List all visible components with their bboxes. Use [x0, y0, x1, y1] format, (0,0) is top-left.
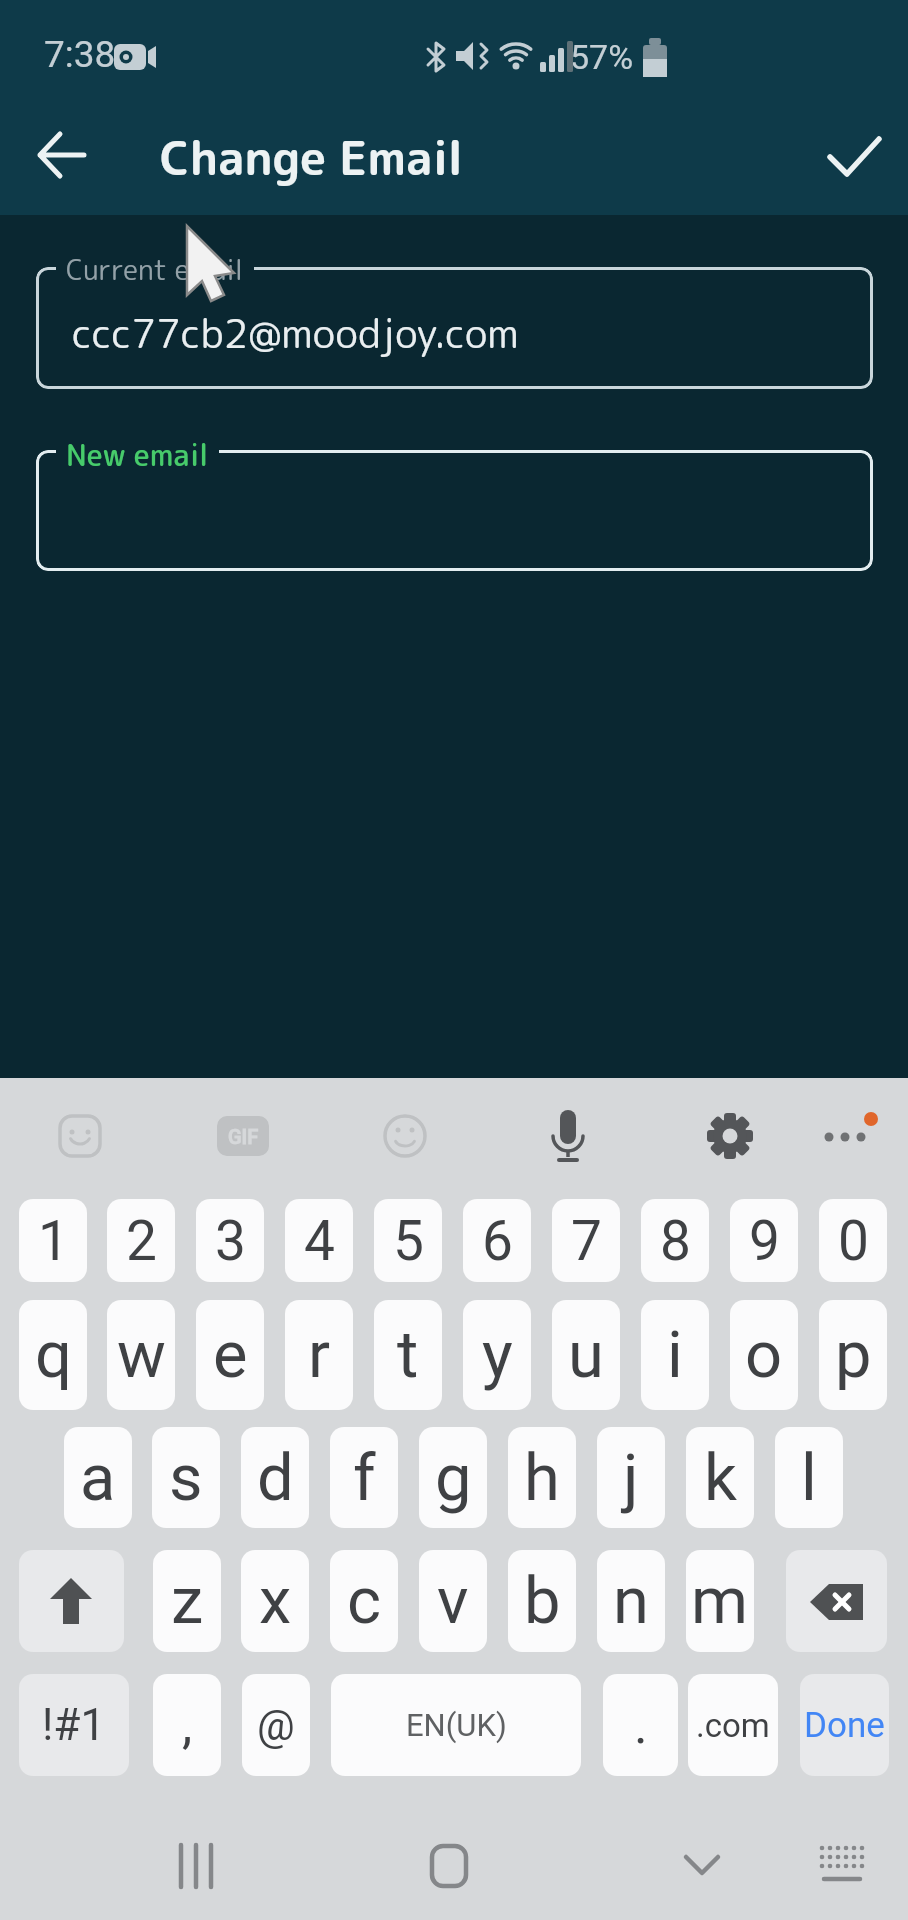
button[interactable]: [160, 1825, 235, 1900]
staticText: o: [745, 1317, 783, 1393]
button[interactable]: [528, 1096, 608, 1176]
button[interactable]: 4: [285, 1199, 353, 1282]
button[interactable]: [805, 1825, 880, 1900]
button[interactable]: [665, 1825, 740, 1900]
button[interactable]: k: [686, 1427, 754, 1528]
staticText: 4: [304, 1209, 335, 1273]
staticText: w: [117, 1317, 166, 1393]
staticText: Change Email: [160, 124, 464, 190]
button[interactable]: [690, 1096, 770, 1176]
button[interactable]: Done: [800, 1674, 889, 1776]
staticText: t: [397, 1317, 419, 1393]
button[interactable]: 5: [374, 1199, 442, 1282]
staticText: 3: [215, 1209, 246, 1273]
button[interactable]: !#1: [19, 1674, 129, 1776]
staticText: GIF: [228, 1125, 259, 1148]
button[interactable]: [818, 122, 893, 188]
staticText: m: [691, 1563, 749, 1639]
button[interactable]: g: [419, 1427, 487, 1528]
staticText: ccc77cb2@moodjoy.com: [72, 305, 519, 361]
button[interactable]: x: [241, 1550, 309, 1652]
button[interactable]: d: [241, 1427, 309, 1528]
staticText: d: [257, 1440, 294, 1516]
staticText: Done: [804, 1705, 885, 1746]
button[interactable]: y: [463, 1300, 531, 1410]
button[interactable]: p: [819, 1300, 887, 1410]
button[interactable]: @: [242, 1674, 310, 1776]
button[interactable]: EN(UK): [331, 1674, 581, 1776]
staticText: 8: [660, 1209, 691, 1273]
button[interactable]: c: [330, 1550, 398, 1652]
staticText: @: [257, 1701, 295, 1750]
staticText: f: [353, 1440, 376, 1516]
staticText: h: [524, 1440, 560, 1516]
staticText: b: [524, 1563, 561, 1639]
button[interactable]: q: [19, 1300, 87, 1410]
button[interactable]: 8: [641, 1199, 709, 1282]
button[interactable]: .: [603, 1674, 678, 1776]
staticText: !#1: [42, 1699, 106, 1751]
staticText: r: [308, 1317, 331, 1393]
button[interactable]: [28, 122, 98, 188]
button[interactable]: 3: [196, 1199, 264, 1282]
staticText: u: [568, 1317, 604, 1393]
staticText: EN(UK): [406, 1707, 507, 1743]
button[interactable]: [805, 1096, 885, 1176]
button[interactable]: n: [597, 1550, 665, 1652]
staticText: g: [435, 1440, 472, 1516]
button[interactable]: j: [597, 1427, 665, 1528]
staticText: 2: [126, 1209, 157, 1273]
staticText: .: [634, 1695, 648, 1756]
button[interactable]: w: [107, 1300, 175, 1410]
staticText: z: [171, 1563, 204, 1639]
button[interactable]: o: [730, 1300, 798, 1410]
staticText: l: [801, 1440, 817, 1516]
button[interactable]: [786, 1550, 887, 1652]
button[interactable]: a: [64, 1427, 132, 1528]
button[interactable]: [36, 267, 873, 389]
staticText: a: [80, 1440, 116, 1516]
staticText: i: [667, 1317, 683, 1393]
button[interactable]: [203, 1096, 283, 1176]
button[interactable]: 0: [819, 1199, 887, 1282]
button[interactable]: 7: [552, 1199, 620, 1282]
staticText: p: [835, 1317, 872, 1393]
button[interactable]: 2: [107, 1199, 175, 1282]
staticText: 1: [38, 1209, 69, 1273]
staticText: v: [437, 1563, 469, 1639]
staticText: s: [169, 1440, 203, 1516]
button[interactable]: m: [686, 1550, 754, 1652]
button[interactable]: e: [196, 1300, 264, 1410]
button[interactable]: i: [641, 1300, 709, 1410]
button[interactable]: b: [508, 1550, 576, 1652]
button[interactable]: z: [153, 1550, 221, 1652]
button[interactable]: [36, 450, 873, 571]
button[interactable]: [365, 1096, 445, 1176]
button[interactable]: s: [152, 1427, 220, 1528]
staticText: 7:38: [44, 33, 116, 76]
button[interactable]: .com: [688, 1674, 778, 1776]
button[interactable]: [412, 1825, 487, 1900]
staticText: .com: [696, 1706, 770, 1745]
staticText: y: [482, 1317, 513, 1393]
button[interactable]: 1: [19, 1199, 87, 1282]
button[interactable]: l: [775, 1427, 843, 1528]
button[interactable]: r: [285, 1300, 353, 1410]
staticText: 57%: [570, 37, 634, 77]
button[interactable]: 6: [463, 1199, 531, 1282]
button[interactable]: ,: [153, 1674, 221, 1776]
staticText: 0: [838, 1209, 869, 1273]
staticText: 9: [749, 1209, 780, 1273]
button[interactable]: v: [419, 1550, 487, 1652]
button[interactable]: f: [330, 1427, 398, 1528]
staticText: c: [347, 1563, 382, 1639]
button[interactable]: t: [374, 1300, 442, 1410]
button[interactable]: 9: [730, 1199, 798, 1282]
button[interactable]: h: [508, 1427, 576, 1528]
button[interactable]: [40, 1096, 120, 1176]
button[interactable]: u: [552, 1300, 620, 1410]
button[interactable]: [19, 1550, 124, 1652]
staticText: j: [623, 1440, 639, 1516]
staticText: e: [213, 1317, 248, 1393]
staticText: New email: [66, 434, 209, 476]
